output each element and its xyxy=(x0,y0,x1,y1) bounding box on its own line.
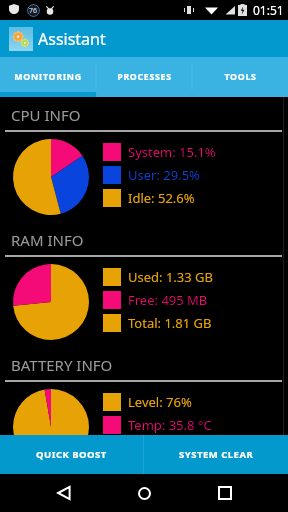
staticText: BATTERY INFO xyxy=(11,355,113,375)
staticText: Used: 1.33 GB xyxy=(128,268,214,286)
staticText: PROCESSES xyxy=(117,71,172,83)
button[interactable]: MONITORING xyxy=(0,57,96,97)
staticText: 01:51 xyxy=(253,2,284,18)
staticText: RAM INFO xyxy=(11,230,84,250)
staticText: Total: 1.81 GB xyxy=(128,314,212,332)
button[interactable]: Back xyxy=(47,476,81,510)
staticText: MONITORING xyxy=(14,71,82,83)
staticText: Idle: 52.6% xyxy=(128,189,195,207)
button[interactable]: Home xyxy=(127,476,161,510)
staticText: User: 29.5% xyxy=(128,166,200,184)
staticText: System: 15.1% xyxy=(128,143,216,161)
other: App icon xyxy=(9,27,33,51)
button[interactable]: TOOLS xyxy=(192,57,288,97)
staticText: Temp: 35.8 °C xyxy=(128,416,212,434)
staticText: Assistant xyxy=(38,28,106,50)
staticText: Level: 76% xyxy=(128,393,192,411)
staticText: QUICK BOOST xyxy=(36,448,107,461)
button[interactable]: Recent apps xyxy=(208,476,242,510)
button[interactable]: PROCESSES xyxy=(96,57,192,97)
staticText: CPU INFO xyxy=(11,105,81,125)
staticText: SYSTEM CLEAR xyxy=(179,448,254,461)
staticText: 76 xyxy=(29,6,38,16)
staticText: TOOLS xyxy=(224,71,257,83)
button[interactable]: App icon xyxy=(0,20,288,57)
button[interactable]: QUICK BOOST xyxy=(0,435,143,474)
button[interactable]: SYSTEM CLEAR xyxy=(144,435,288,474)
staticText: Free: 495 MB xyxy=(128,291,208,309)
